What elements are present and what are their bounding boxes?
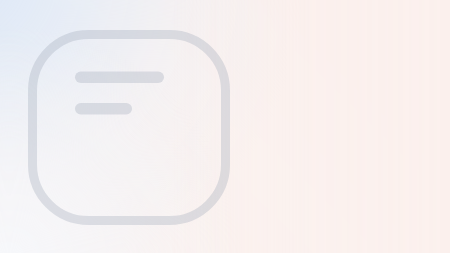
button[interactable]: Document placeholder bbox=[0, 0, 450, 253]
